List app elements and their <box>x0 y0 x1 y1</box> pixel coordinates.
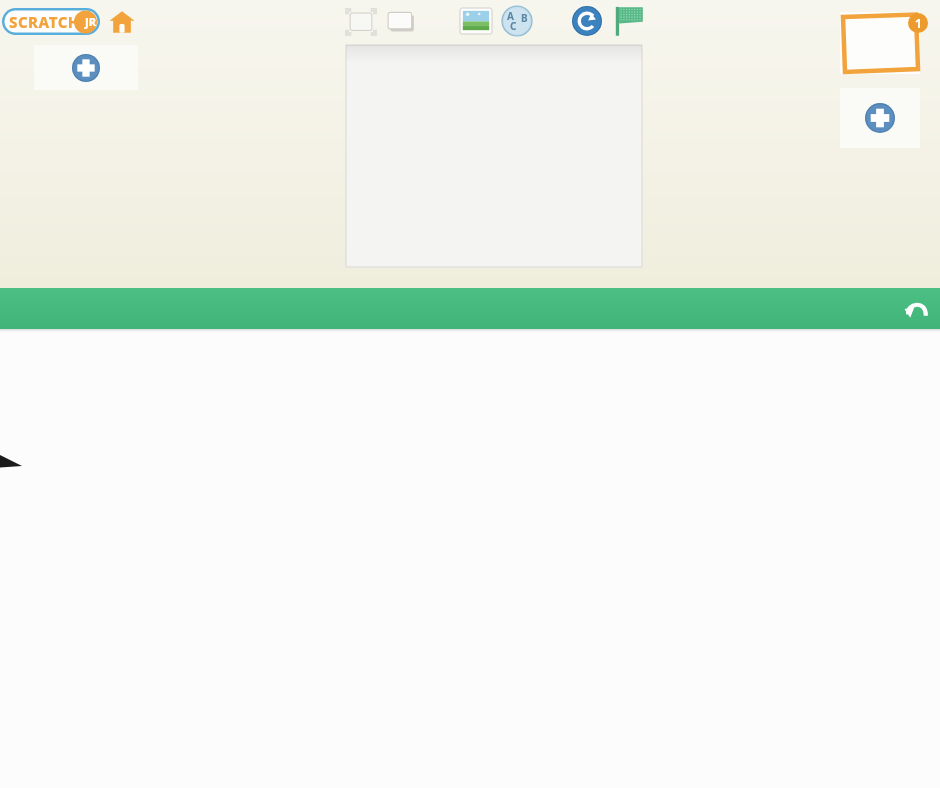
button[interactable]: Add text <box>500 4 533 37</box>
button[interactable]: Go <box>613 4 645 38</box>
button[interactable]: Home <box>107 7 137 37</box>
button[interactable]: Add page <box>840 88 920 148</box>
staticText: JR <box>85 14 97 29</box>
staticText: C <box>510 19 517 33</box>
button[interactable]: Reset <box>570 4 603 37</box>
staticText: A <box>507 9 514 23</box>
button[interactable]: Grid <box>386 7 416 37</box>
button[interactable]: Undo <box>900 292 934 326</box>
staticText: 1 <box>915 15 922 31</box>
staticText: B <box>521 11 528 25</box>
button[interactable]: ScratchJr <box>2 7 102 37</box>
button[interactable]: Page 1 <box>840 12 920 74</box>
button[interactable]: Background <box>459 6 493 36</box>
staticText: SCRATCH <box>9 12 80 32</box>
button[interactable]: Add character <box>34 45 138 90</box>
button[interactable]: Full screen <box>344 5 378 39</box>
